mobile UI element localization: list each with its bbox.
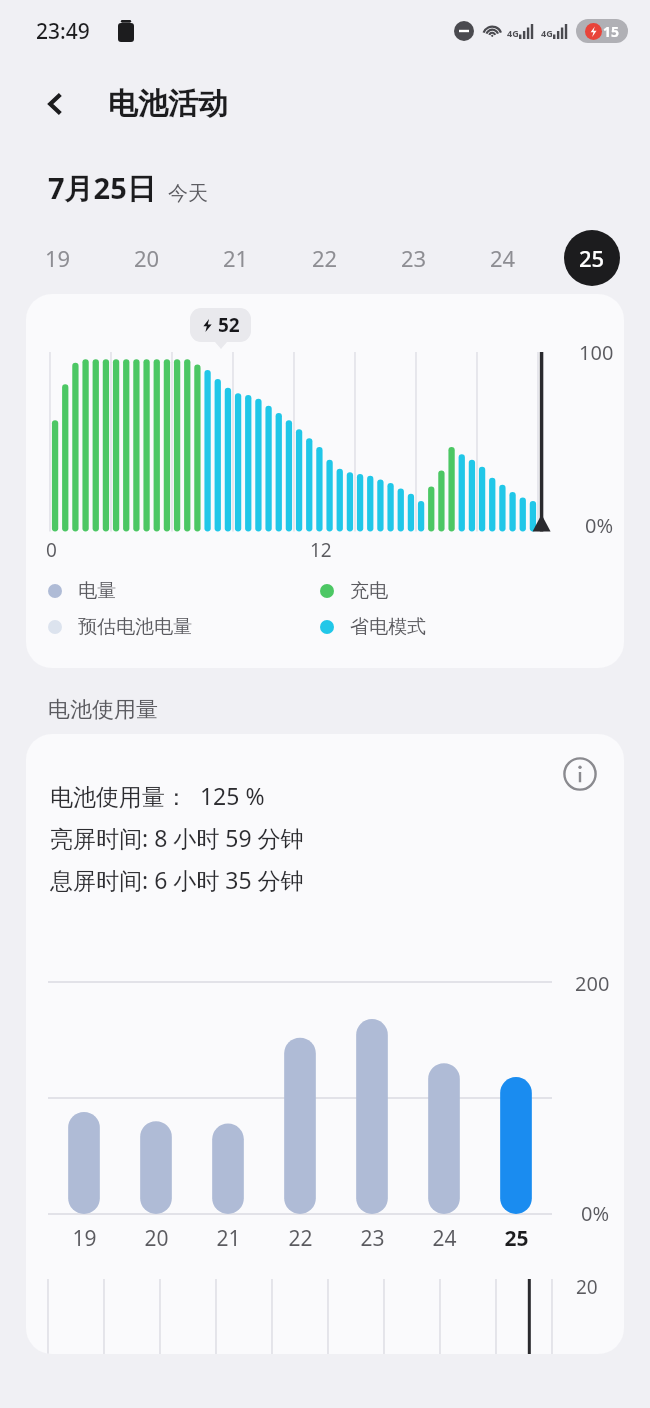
button[interactable]: 24 <box>475 230 531 286</box>
staticText: 100 <box>579 339 614 366</box>
staticText: 19 <box>72 1224 97 1253</box>
staticText: 电池活动 <box>108 85 228 123</box>
staticText: 22 <box>288 1224 313 1253</box>
staticText: 息屏时间: 6 小时 35 分钟 <box>50 864 304 895</box>
staticText: 0% <box>581 1200 610 1227</box>
staticText: 省电模式 <box>350 615 426 639</box>
staticText: 20 <box>144 1224 169 1253</box>
button[interactable]: 23 <box>386 230 442 286</box>
staticText: 0 <box>46 537 57 563</box>
staticText: 25 <box>504 1224 529 1253</box>
button[interactable]: 22 <box>297 230 353 286</box>
staticText: 19 <box>45 243 71 273</box>
staticText: 亮屏时间: 8 小时 59 分钟 <box>50 822 304 853</box>
staticText: 今天 <box>168 181 208 206</box>
staticText: 24 <box>490 243 516 273</box>
staticText: 52 <box>218 312 240 338</box>
staticText: 24 <box>432 1224 457 1253</box>
staticText: 21 <box>223 243 249 273</box>
staticText: 23:49 <box>36 17 90 46</box>
staticText: 12 <box>310 537 332 563</box>
staticText: 4G <box>507 27 519 39</box>
staticText: 25 <box>579 243 605 273</box>
button[interactable]: Back <box>28 76 84 132</box>
staticText: 电池使用量： 125 % <box>50 780 265 811</box>
button[interactable]: 21 <box>208 230 264 286</box>
button[interactable]: 52 <box>26 294 624 668</box>
button[interactable]: 电池使用量： 125 % <box>26 734 624 1354</box>
staticText: 预估电池电量 <box>78 615 192 639</box>
button[interactable]: 20 <box>119 230 175 286</box>
staticText: 4G <box>541 27 553 39</box>
button[interactable]: Information <box>554 748 606 800</box>
staticText: 23 <box>360 1224 385 1253</box>
staticText: 充电 <box>350 579 388 603</box>
staticText: 23 <box>401 243 427 273</box>
staticText: 15 <box>603 22 620 41</box>
staticText: 22 <box>312 243 338 273</box>
staticText: 21 <box>216 1224 241 1253</box>
staticText: 电量 <box>78 579 116 603</box>
staticText: 20 <box>576 1274 598 1300</box>
staticText: 0% <box>585 512 614 539</box>
staticText: 7月25日 <box>48 168 156 208</box>
button[interactable]: 19 <box>30 230 86 286</box>
button[interactable]: 25 <box>564 230 620 286</box>
staticText: 200 <box>575 970 610 997</box>
staticText: 电池使用量 <box>48 696 158 724</box>
staticText: 20 <box>134 243 160 273</box>
